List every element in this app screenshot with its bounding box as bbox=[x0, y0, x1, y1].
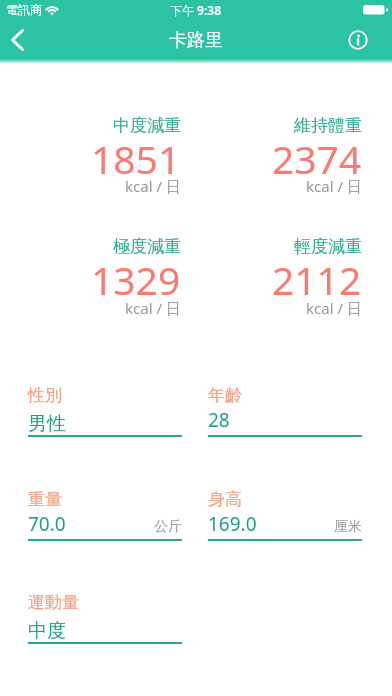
staticText: 性別 bbox=[28, 385, 62, 406]
staticText: 中度減重 bbox=[113, 115, 181, 136]
staticText: 1851 bbox=[91, 132, 181, 185]
staticText: 2112 bbox=[272, 253, 362, 306]
button[interactable]: 身高 bbox=[208, 487, 362, 543]
staticText: 70.0 bbox=[28, 511, 66, 537]
staticText: kcal / 日 bbox=[125, 298, 181, 318]
button[interactable]: 重量 bbox=[28, 487, 182, 543]
staticText: 厘米 bbox=[334, 518, 362, 536]
staticText: 年齡 bbox=[208, 385, 242, 406]
staticText: 1329 bbox=[91, 253, 181, 306]
staticText: 身高 bbox=[208, 489, 242, 510]
button[interactable] bbox=[339, 21, 377, 59]
staticText: 重量 bbox=[28, 489, 62, 510]
staticText: 28 bbox=[208, 407, 230, 433]
button[interactable] bbox=[0, 24, 40, 60]
staticText: 卡路里 bbox=[169, 29, 223, 52]
staticText: kcal / 日 bbox=[306, 176, 362, 196]
staticText: 運動量 bbox=[28, 592, 79, 613]
staticText: kcal / 日 bbox=[125, 176, 181, 196]
button[interactable]: 性別 bbox=[28, 383, 182, 439]
staticText: 2374 bbox=[272, 132, 362, 185]
button[interactable]: 年齡 bbox=[208, 383, 362, 439]
staticText: 公斤 bbox=[154, 518, 182, 536]
staticText: 維持體重 bbox=[294, 115, 362, 136]
staticText: 電訊商 bbox=[6, 2, 42, 17]
staticText: 男性 bbox=[28, 412, 66, 436]
staticText: 極度減重 bbox=[113, 236, 181, 257]
staticText: 下午 9:38 bbox=[170, 2, 222, 18]
staticText: 169.0 bbox=[208, 511, 257, 537]
button[interactable]: 運動量 bbox=[28, 590, 182, 646]
staticText: 輕度減重 bbox=[294, 236, 362, 257]
staticText: kcal / 日 bbox=[306, 298, 362, 318]
staticText: 中度 bbox=[28, 619, 66, 643]
